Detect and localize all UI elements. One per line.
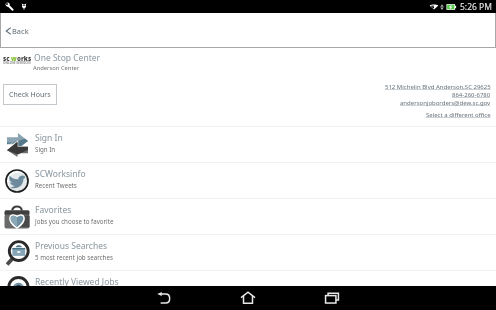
staticText: Anderson Center bbox=[33, 64, 80, 72]
button[interactable]: 512 Michelin Blvd Anderson,SC 29625 bbox=[385, 83, 491, 91]
button[interactable]: andersonjoborders@dew.sc.gov bbox=[400, 99, 491, 107]
staticText: Check Hours bbox=[9, 90, 51, 100]
staticText: sc bbox=[3, 54, 10, 62]
button[interactable]: Favorites bbox=[0, 198, 496, 234]
button[interactable]: Back bbox=[134, 286, 194, 310]
button[interactable]: Previous Searches bbox=[0, 234, 496, 270]
button[interactable]: Back bbox=[0, 13, 496, 48]
staticText: Back bbox=[12, 26, 29, 36]
staticText: Favorites bbox=[35, 204, 72, 216]
staticText: Recent Tweets bbox=[35, 181, 77, 189]
staticText: Previous Searches bbox=[35, 240, 108, 252]
button[interactable]: Sign In bbox=[0, 126, 496, 162]
staticText: 5 most recent job searches bbox=[35, 253, 113, 261]
button[interactable]: SCWorksinfo bbox=[0, 162, 496, 198]
button[interactable]: 864-260-6780 bbox=[452, 91, 491, 99]
staticText: SCWorksinfo bbox=[35, 168, 86, 180]
button[interactable]: Recent apps bbox=[302, 286, 362, 310]
button[interactable]: Home bbox=[218, 286, 278, 310]
button[interactable]: Recently Viewed Jobs bbox=[0, 270, 496, 306]
staticText: 5:26 PM bbox=[460, 1, 492, 13]
staticText: Jobs you choose to favorite bbox=[35, 217, 114, 225]
staticText: Recently Viewed Jobs bbox=[35, 276, 119, 288]
staticText: Sign In bbox=[35, 145, 56, 153]
staticText: One Stop Center bbox=[34, 52, 101, 64]
button[interactable]: Check Hours bbox=[3, 84, 57, 105]
staticText: w bbox=[11, 54, 17, 62]
staticText: orks bbox=[17, 54, 32, 62]
staticText: ONLINE SERVICES bbox=[3, 61, 31, 65]
staticText: Sign In bbox=[35, 132, 63, 144]
button[interactable]: Select a different office bbox=[426, 111, 491, 119]
